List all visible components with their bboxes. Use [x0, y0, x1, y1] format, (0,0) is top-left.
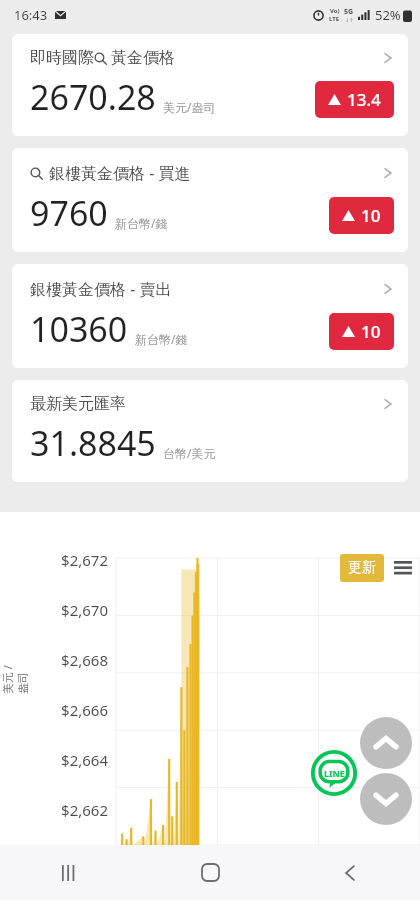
button[interactable]: 10: [329, 197, 394, 234]
button[interactable]: 13.4: [315, 81, 394, 118]
button[interactable]: 銀樓黃金價格 - 買進: [12, 148, 408, 252]
staticText: 最新美元匯率: [30, 394, 126, 414]
staticText: 美元/盎司: [163, 99, 216, 115]
staticText: LINE: [324, 767, 345, 779]
staticText: 10360: [30, 306, 128, 352]
button[interactable]: Back: [280, 845, 420, 900]
staticText: LTE: [329, 15, 340, 23]
button[interactable]: Scroll down: [360, 773, 412, 825]
staticText: $2,662: [30, 800, 108, 820]
staticText: 即時國際: [30, 48, 94, 68]
staticText: 16:43: [14, 6, 48, 24]
button[interactable]: 銀樓黃金價格 - 賣出: [12, 264, 408, 368]
staticText: 10: [361, 204, 381, 227]
staticText: 美元 / 盎司: [0, 664, 30, 694]
staticText: 銀樓黃金價格 - 賣出: [30, 278, 172, 300]
button[interactable]: 最新美元匯率: [12, 380, 408, 482]
staticText: 2670.28: [30, 74, 156, 120]
staticText: $2,668: [30, 650, 108, 670]
button[interactable]: Menu: [392, 557, 414, 579]
staticText: 9760: [30, 190, 108, 236]
staticText: 銀樓黃金價格 - 買進: [49, 162, 191, 184]
staticText: 13.4: [347, 88, 381, 111]
staticText: 10: [361, 320, 381, 343]
staticText: 31.8845: [30, 420, 156, 466]
staticText: $2,666: [30, 700, 108, 720]
staticText: $2,670: [30, 600, 108, 620]
button[interactable]: Home: [140, 845, 280, 900]
staticText: Vo): [330, 7, 340, 15]
button[interactable]: 即時國際: [12, 34, 408, 136]
staticText: 新台幣/錢: [115, 215, 168, 231]
staticText: 52%: [375, 6, 401, 24]
button[interactable]: Scroll up: [360, 717, 412, 769]
button[interactable]: 更新: [340, 554, 384, 582]
staticText: $2,664: [30, 750, 108, 770]
staticText: 黃金價格: [111, 48, 175, 68]
button[interactable]: 10: [329, 313, 394, 350]
button[interactable]: Recents: [0, 845, 140, 900]
staticText: $2,672: [30, 550, 108, 570]
button[interactable]: LINE: [310, 749, 358, 797]
staticText: 台幣/美元: [163, 445, 216, 461]
staticText: 新台幣/錢: [135, 331, 188, 347]
staticText: ↓↑: [345, 17, 354, 23]
staticText: 5G: [344, 7, 354, 17]
staticText: 更新: [348, 559, 376, 577]
